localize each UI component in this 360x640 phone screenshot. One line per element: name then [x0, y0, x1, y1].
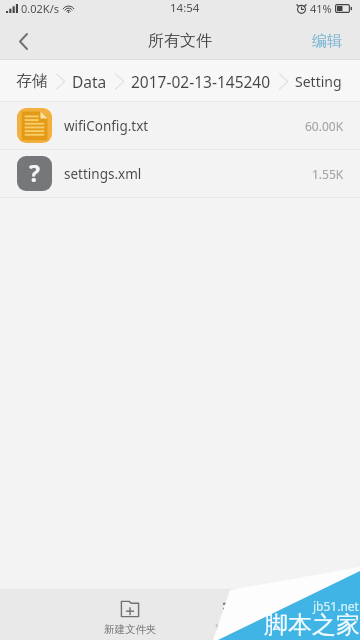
staticText: 脚本之家	[264, 610, 360, 640]
button[interactable]: ?	[0, 150, 360, 198]
staticText: 所有文件	[148, 31, 212, 51]
button[interactable]: Setting	[295, 72, 342, 91]
button[interactable]: 2017-02-13-145240	[131, 71, 271, 92]
button[interactable]: Data	[72, 71, 107, 92]
staticText: 更多	[215, 623, 236, 636]
button[interactable]: 编辑	[294, 22, 360, 60]
staticText: settings.xml	[64, 165, 142, 183]
staticText: ?	[29, 157, 40, 188]
button[interactable]: Back	[0, 22, 46, 60]
staticText: 60.00K	[305, 118, 344, 134]
button[interactable]: 存储	[16, 71, 48, 91]
staticText: 2017-02-13-145240	[131, 71, 271, 92]
staticText: 41%	[310, 1, 332, 16]
staticText: Setting	[295, 72, 342, 91]
staticText: 新建文件夹	[104, 623, 157, 636]
button[interactable]: wifiConfig.txt	[0, 102, 360, 150]
staticText: 编辑	[312, 32, 342, 51]
staticText: 存储	[16, 71, 48, 91]
staticText: jb51.net	[313, 598, 359, 614]
staticText: 1.55K	[312, 166, 344, 182]
button[interactable]: 新建文件夹	[85, 590, 175, 640]
staticText: wifiConfig.txt	[64, 117, 149, 135]
button[interactable]: 更多	[180, 590, 270, 640]
staticText: 14:54	[170, 0, 200, 16]
staticText: Data	[72, 71, 107, 92]
staticText: 0.02K/s	[21, 1, 59, 16]
